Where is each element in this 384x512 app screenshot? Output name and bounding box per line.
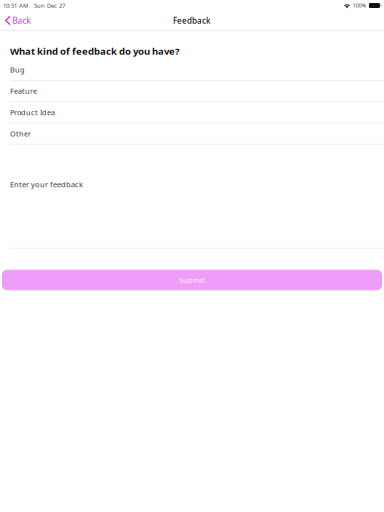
button[interactable]: Submit [2, 270, 382, 290]
staticText: Bug [10, 65, 25, 75]
staticText: 10:51 AM [3, 1, 28, 9]
staticText: Product Idea [10, 107, 55, 117]
button[interactable]: Product Idea [0, 102, 384, 123]
staticText: Enter your feedback [10, 179, 83, 189]
staticText: 100% [353, 2, 367, 9]
staticText: What kind of feedback do you have? [10, 44, 180, 57]
button[interactable]: Feature [0, 81, 384, 102]
staticText: Sun Dec 27 [34, 1, 65, 9]
button[interactable]: Back [0, 11, 35, 30]
staticText: Feedback [173, 15, 211, 26]
staticText: Feature [10, 86, 37, 96]
button[interactable]: Bug [0, 59, 384, 81]
button[interactable]: Enter your feedback [0, 145, 384, 249]
staticText: Submit [179, 275, 205, 285]
staticText: Back [13, 15, 31, 26]
button[interactable]: Other [0, 123, 384, 145]
staticText: Other [10, 129, 31, 139]
